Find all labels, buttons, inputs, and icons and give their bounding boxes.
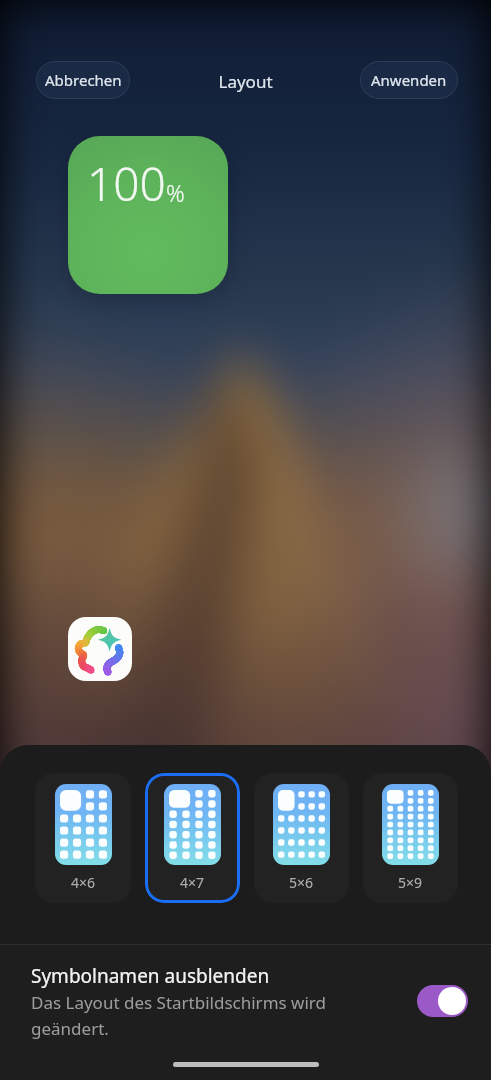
staticText: Das Layout des Startbildschirms wird geä…: [31, 991, 371, 1040]
button[interactable]: Galaxy AI app: [68, 617, 132, 681]
staticText: Anwenden: [371, 70, 447, 90]
staticText: Layout: [0, 70, 491, 93]
staticText: Abbrechen: [45, 70, 122, 90]
button[interactable]: 4×7: [145, 773, 240, 903]
button[interactable]: 5×9: [363, 773, 458, 903]
button[interactable]: 5×6: [254, 773, 349, 903]
staticText: %: [166, 177, 185, 208]
button[interactable]: 4×6: [35, 773, 131, 903]
staticText: Symbolnamen ausblenden: [31, 963, 270, 989]
button[interactable]: Symbolnamen ausblenden toggle: [417, 985, 468, 1017]
staticText: 4×6: [71, 873, 96, 892]
button[interactable]: Symbolnamen ausblenden: [31, 963, 468, 1040]
staticText: 100: [87, 152, 166, 215]
staticText: 5×6: [289, 873, 314, 892]
button[interactable]: 100: [68, 136, 228, 294]
button[interactable]: Anwenden: [360, 61, 458, 99]
staticText: 5×9: [398, 873, 423, 892]
staticText: 4×7: [180, 873, 205, 892]
button[interactable]: Abbrechen: [36, 61, 130, 99]
